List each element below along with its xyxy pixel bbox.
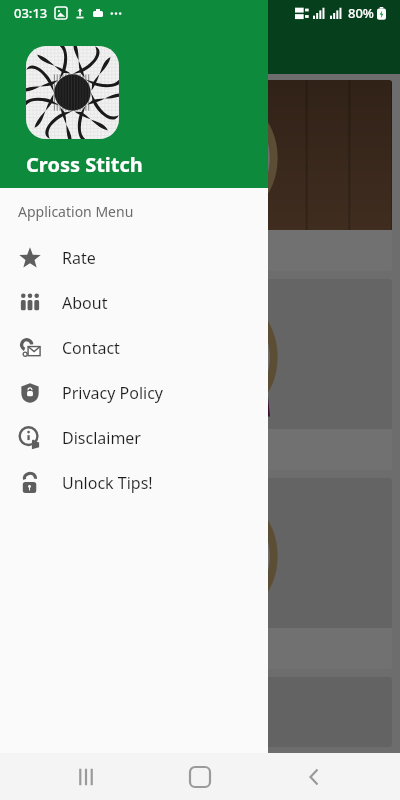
staticText: 80% [348,4,374,22]
button[interactable]: Cross Stitch 2 [8,80,392,271]
staticText: Rate [62,247,96,269]
button[interactable]: Cross Stitch 6 [8,478,392,669]
staticText: Cross Stitch Design [64,37,238,63]
staticText: Contact [62,337,120,359]
button[interactable]: Cross Stitch [0,0,268,188]
button[interactable]: Disclaimer [0,415,268,460]
staticText: 03:13 [14,4,48,22]
button[interactable]: Rate [0,235,268,280]
button[interactable]: Recents [58,753,114,800]
button[interactable]: About [0,280,268,325]
button[interactable]: Privacy Policy [0,370,268,415]
staticText: Unlock Tips! [62,472,153,494]
button[interactable]: Unlock Tips! [0,460,268,505]
button[interactable]: Home [172,753,228,800]
staticText: Cross Stitch 4 [20,437,134,460]
staticText: Cross Stitch [26,151,143,178]
button[interactable]: Cross Stitch 8 [8,677,392,747]
button[interactable]: Back [286,753,342,800]
staticText: About [62,292,108,314]
button[interactable]: Cross Stitch 4 [8,279,392,470]
staticText: Privacy Policy [62,382,163,404]
button[interactable]: Contact [0,325,268,370]
staticText: Application Menu [18,202,134,221]
staticText: Disclaimer [62,427,141,449]
button[interactable]: Cross Stitch Design [0,26,400,74]
staticText: Cross Stitch 2 [20,238,134,261]
